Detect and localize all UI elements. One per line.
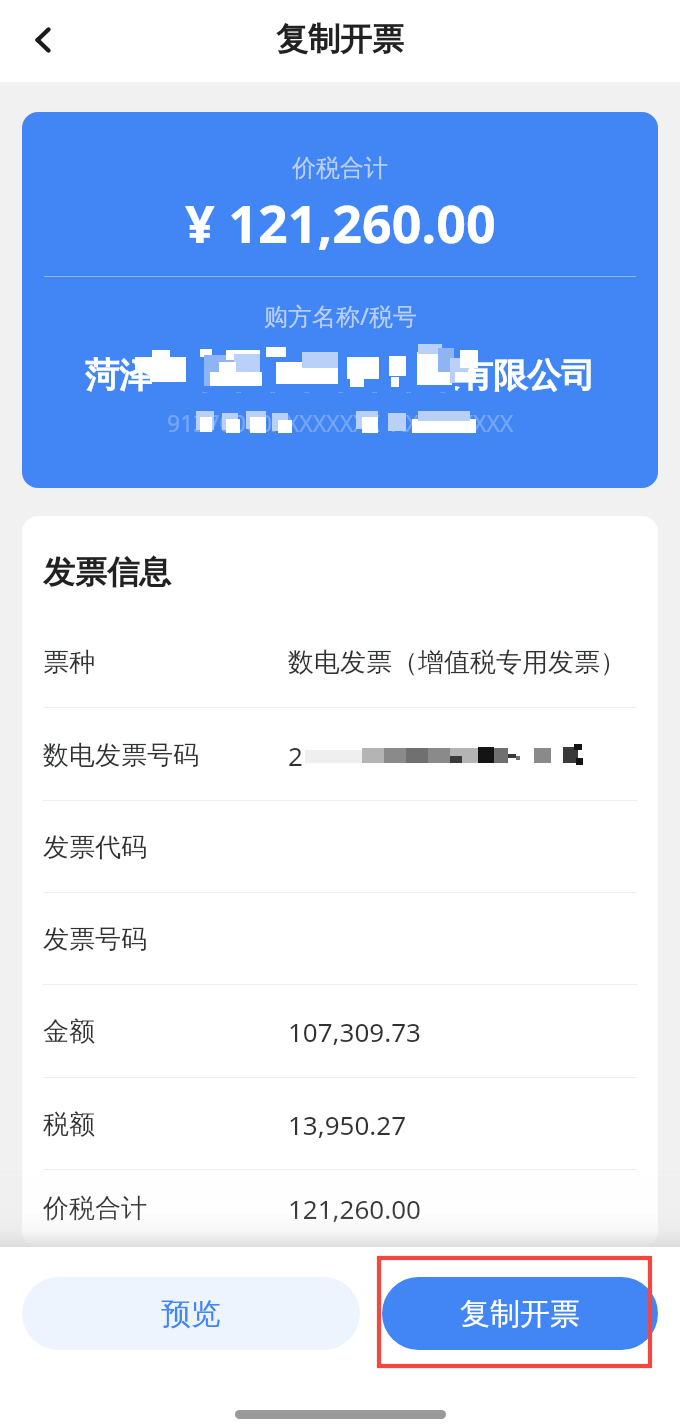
button[interactable]: Back: [14, 12, 72, 70]
staticText: 购方名称/税号: [264, 299, 417, 332]
staticText: 数电发票号码: [43, 739, 199, 772]
staticText: 复制开票: [276, 19, 404, 59]
staticText: 107,309.73: [288, 1014, 421, 1049]
staticText: 发票代码: [43, 831, 147, 864]
staticText: 数电发票（增值税专用发票）: [288, 646, 626, 679]
staticText: 13,950.27: [288, 1107, 407, 1142]
staticText: 复制开票: [460, 1295, 580, 1333]
staticText: ¥ 121,260.00: [185, 187, 496, 258]
staticText: 121,260.00: [288, 1191, 421, 1226]
staticText: 金额: [43, 1015, 95, 1048]
staticText: 发票号码: [43, 923, 147, 956]
staticText: 价税合计: [43, 1192, 147, 1225]
staticText: 税额: [43, 1108, 95, 1141]
button[interactable]: 预览: [22, 1277, 360, 1350]
staticText: 2: [288, 738, 303, 773]
staticText: 预览: [161, 1295, 221, 1333]
staticText: 菏泽市某某某某某某某某有限公司: [85, 354, 595, 397]
staticText: 发票信息: [43, 552, 171, 592]
staticText: 价税合计: [292, 153, 388, 183]
button[interactable]: 复制开票: [382, 1277, 658, 1350]
staticText: 91370000XXXXXXXX XXXXXXXXX: [167, 407, 514, 438]
staticText: 票种: [43, 646, 95, 679]
